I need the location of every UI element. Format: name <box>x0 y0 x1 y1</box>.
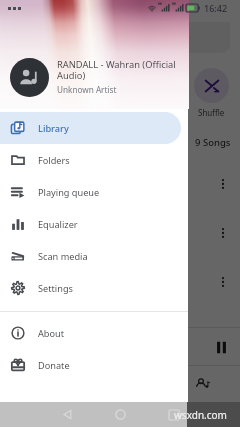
staticText: RANDALL - Wahran (Official <box>45 336 154 348</box>
button[interactable]: More options <box>210 171 236 197</box>
staticText: 16:42 <box>204 2 228 14</box>
button[interactable]: Nightcore - Something western… <box>10 213 236 252</box>
staticText: Shuffle <box>107 107 134 118</box>
button[interactable]: Artists <box>186 368 218 400</box>
button[interactable]: Folders <box>0 144 181 176</box>
button[interactable]: Another track (Official Audio) 🗑 <box>10 262 236 301</box>
staticText: Library <box>38 122 69 135</box>
staticText: About <box>38 327 65 340</box>
button[interactable]: Scan media <box>0 240 181 272</box>
staticText: Playing queue <box>38 186 100 199</box>
staticText: Shuffle <box>15 107 42 118</box>
button[interactable]: Recents <box>162 402 186 427</box>
button[interactable]: More options <box>210 269 236 295</box>
staticText: Shuffle <box>152 107 179 118</box>
button[interactable]: Library <box>0 112 181 144</box>
staticText: Donate <box>38 359 70 372</box>
staticText: RANDALL - Wahran (Official Audio) <box>57 58 176 82</box>
button[interactable]: Playing queue <box>0 176 181 208</box>
staticText: 9 Songs <box>195 136 231 149</box>
button[interactable]: Shuffle <box>103 68 138 118</box>
staticText: Nightcore - Something western… <box>49 222 181 234</box>
staticText: Folders <box>38 154 70 167</box>
staticText: Unknown Artist • 3:05 <box>49 185 120 195</box>
staticText: Songs <box>12 136 40 149</box>
button[interactable]: Shuffle <box>148 68 183 118</box>
button[interactable]: RANDALL - Wahran (Official Audio) <box>10 164 236 203</box>
staticText: wsxdn.com <box>174 408 227 422</box>
button[interactable]: Home <box>108 402 132 427</box>
staticText: Shuffle <box>198 107 225 118</box>
button[interactable]: Equalizer <box>0 208 181 240</box>
staticText: Unknown Artist <box>57 84 117 95</box>
button[interactable]: RANDALL - Wahran (Official <box>10 328 236 365</box>
button[interactable]: Shuffle <box>11 68 46 118</box>
button[interactable]: Donate <box>0 349 181 381</box>
staticText: Equalizer <box>38 218 78 231</box>
button[interactable]: Pause <box>206 332 236 362</box>
button[interactable]: Back <box>55 402 79 427</box>
button[interactable]: About <box>0 317 181 349</box>
staticText: Shuffle <box>61 107 88 118</box>
staticText: Settings <box>38 282 73 295</box>
button[interactable]: More options <box>210 220 236 246</box>
button[interactable]: Shuffle <box>194 68 229 118</box>
button[interactable]: Settings <box>0 272 181 304</box>
button[interactable]: Shuffle <box>57 68 92 118</box>
staticText: Unknown Artist • 4:12 <box>49 283 120 293</box>
button[interactable]: Artists <box>22 368 54 400</box>
staticText: Scan media <box>38 250 88 263</box>
